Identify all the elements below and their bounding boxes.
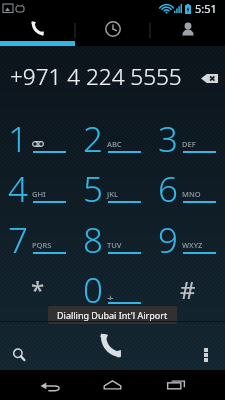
staticText: 3 — [158, 115, 178, 161]
staticText: WXYZ — [182, 240, 203, 250]
staticText: 8 — [83, 216, 103, 262]
staticText: 5:51 — [195, 1, 217, 16]
button[interactable]: Dialer — [0, 16, 75, 46]
staticText: 7 — [8, 216, 28, 262]
button[interactable]: 4 — [0, 168, 75, 218]
button[interactable]: Recent apps — [151, 370, 201, 400]
button[interactable]: 0 — [75, 269, 150, 319]
button[interactable]: Home — [88, 370, 138, 400]
staticText: 6 — [158, 165, 178, 211]
staticText: DEF — [182, 139, 196, 149]
button[interactable]: 1 — [0, 118, 75, 168]
button[interactable]: # — [150, 269, 225, 319]
staticText: Dialling Dubai Int'l Airport — [57, 309, 168, 321]
staticText: 5 — [83, 165, 103, 211]
button[interactable]: 5 — [75, 168, 150, 218]
button[interactable]: 9 — [150, 219, 225, 269]
button[interactable]: Search — [0, 322, 56, 370]
button[interactable]: Back — [25, 370, 75, 400]
staticText: 0 — [83, 266, 103, 312]
staticText: ABC — [107, 139, 122, 149]
button[interactable]: 8 — [75, 219, 150, 269]
button[interactable]: Call log — [75, 16, 150, 46]
button[interactable]: Call — [84, 322, 141, 370]
staticText: + — [107, 290, 114, 300]
staticText: JKL — [107, 189, 118, 199]
staticText: GHI — [32, 189, 46, 199]
button[interactable]: 7 — [0, 219, 75, 269]
button[interactable]: * — [0, 269, 75, 319]
staticText: TUV — [107, 240, 122, 250]
button[interactable]: Contacts — [150, 16, 225, 46]
button[interactable]: More options — [180, 322, 225, 370]
staticText: PQRS — [32, 240, 52, 250]
button[interactable]: 2 — [75, 118, 150, 168]
button[interactable]: 3 — [150, 118, 225, 168]
staticText: +971 4 224 5555 — [10, 61, 182, 92]
staticText: * — [31, 273, 45, 306]
button[interactable]: 6 — [150, 168, 225, 218]
staticText: 1 — [8, 115, 28, 161]
staticText: MNO — [182, 189, 201, 199]
staticText: 4 — [8, 165, 28, 211]
button[interactable]: Delete — [191, 46, 225, 102]
staticText: # — [180, 273, 196, 306]
staticText: 9 — [158, 216, 178, 262]
staticText: 2 — [83, 115, 103, 161]
